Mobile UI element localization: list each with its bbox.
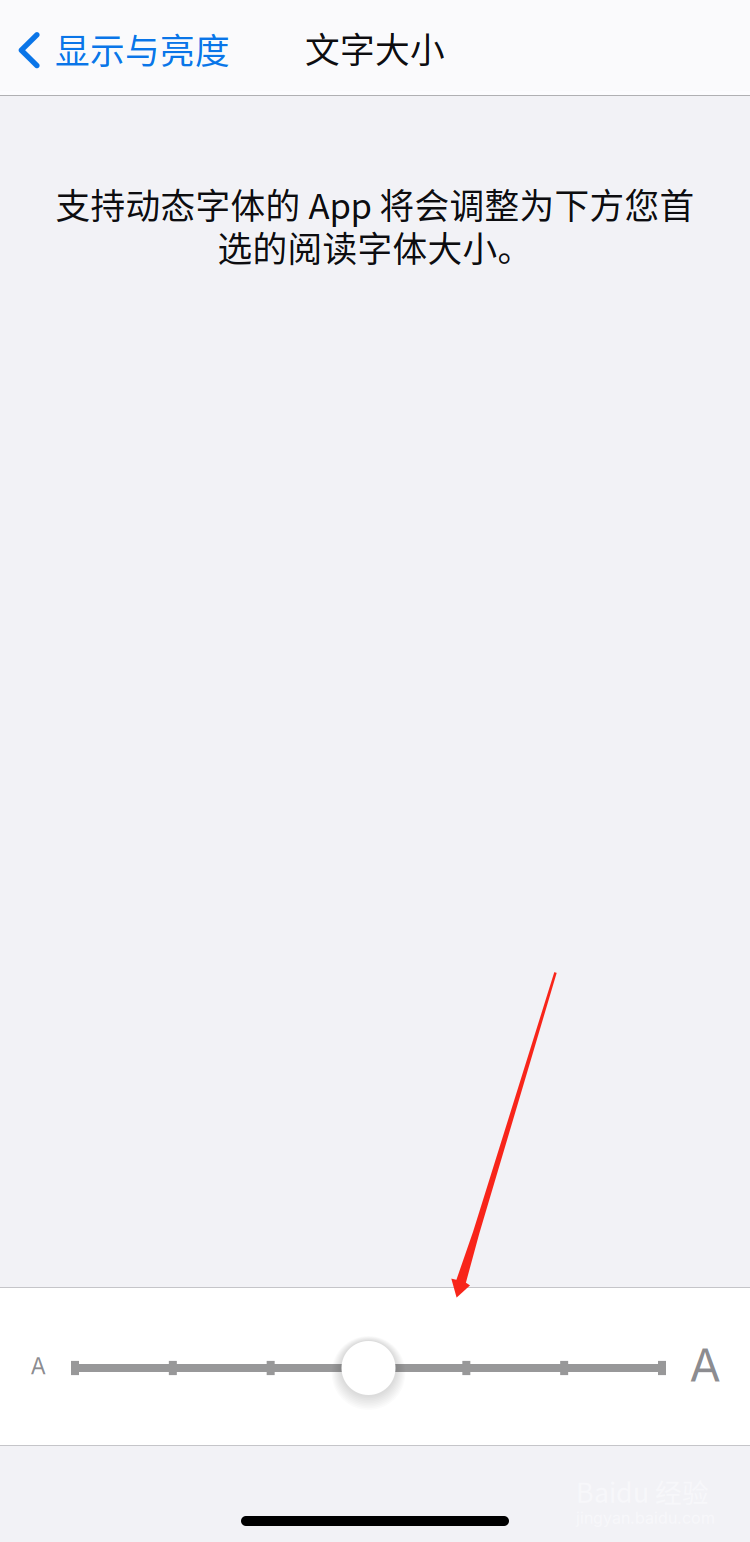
staticText: 显示与亮度 bbox=[55, 24, 230, 74]
staticText: A bbox=[689, 1338, 720, 1392]
button[interactable]: 显示与亮度 bbox=[0, 0, 248, 96]
staticText: 支持动态字体的 App 将会调整为下方您首 bbox=[55, 179, 694, 229]
staticText: 选的阅读字体大小。 bbox=[217, 222, 532, 272]
staticText: A bbox=[30, 1352, 45, 1380]
staticText: 文字大小 bbox=[305, 23, 445, 73]
button[interactable]: Text size bbox=[0, 1287, 750, 1445]
